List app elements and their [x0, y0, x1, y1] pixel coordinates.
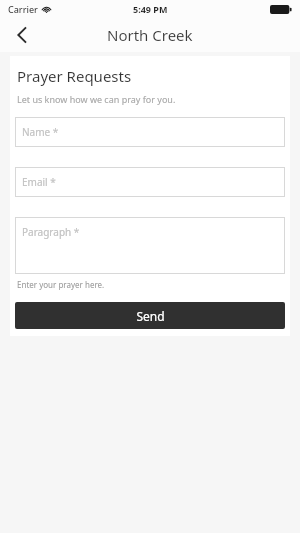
staticText: Let us know how we can pray for you. — [17, 93, 176, 105]
staticText: Name * — [22, 125, 59, 139]
button[interactable]: Email * — [15, 167, 285, 197]
staticText: Send — [136, 308, 165, 324]
button[interactable]: Paragraph * — [15, 217, 285, 274]
staticText: Paragraph * — [22, 225, 80, 239]
staticText: Email * — [22, 175, 56, 189]
button[interactable]: Name * — [15, 117, 285, 147]
staticText: Prayer Requests — [17, 66, 132, 86]
button[interactable]: Send — [15, 302, 285, 329]
staticText: Enter your prayer here. — [17, 279, 105, 290]
button[interactable]: Back — [0, 18, 44, 52]
staticText: Carrier — [8, 3, 38, 15]
staticText: North Creek — [107, 25, 193, 45]
staticText: 5:49 PM — [133, 3, 168, 15]
